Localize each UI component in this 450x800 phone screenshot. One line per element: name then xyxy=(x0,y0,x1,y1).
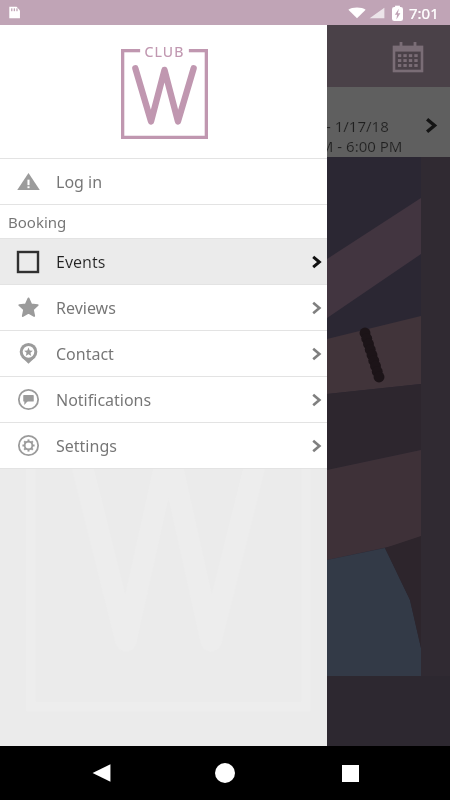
staticText: Notifications xyxy=(56,389,152,411)
staticText: Log in xyxy=(56,171,103,193)
staticText: 10:00 AM - 6:00 PM xyxy=(268,136,403,156)
staticText: Events xyxy=(56,251,106,273)
staticText: Reviews xyxy=(56,297,116,319)
button[interactable]: Recent apps xyxy=(326,749,374,797)
staticText: 1/15/18 - 1/17/18 xyxy=(268,116,389,136)
staticText: Booking xyxy=(8,212,67,232)
button[interactable]: Events xyxy=(0,239,327,284)
button[interactable]: Settings xyxy=(0,423,327,468)
staticText: Contact xyxy=(56,343,114,365)
button[interactable]: Home xyxy=(201,749,249,797)
button[interactable]: Contact xyxy=(0,331,327,376)
button[interactable]: Reviews xyxy=(0,285,327,330)
staticText: 7:01 xyxy=(409,3,439,23)
staticText: Settings xyxy=(56,435,117,457)
button[interactable]: Back xyxy=(77,749,125,797)
staticText: CLUB xyxy=(121,42,208,61)
button[interactable]: Log in xyxy=(0,159,327,204)
button[interactable]: Notifications xyxy=(0,377,327,422)
button[interactable]: Calendar xyxy=(394,42,422,71)
